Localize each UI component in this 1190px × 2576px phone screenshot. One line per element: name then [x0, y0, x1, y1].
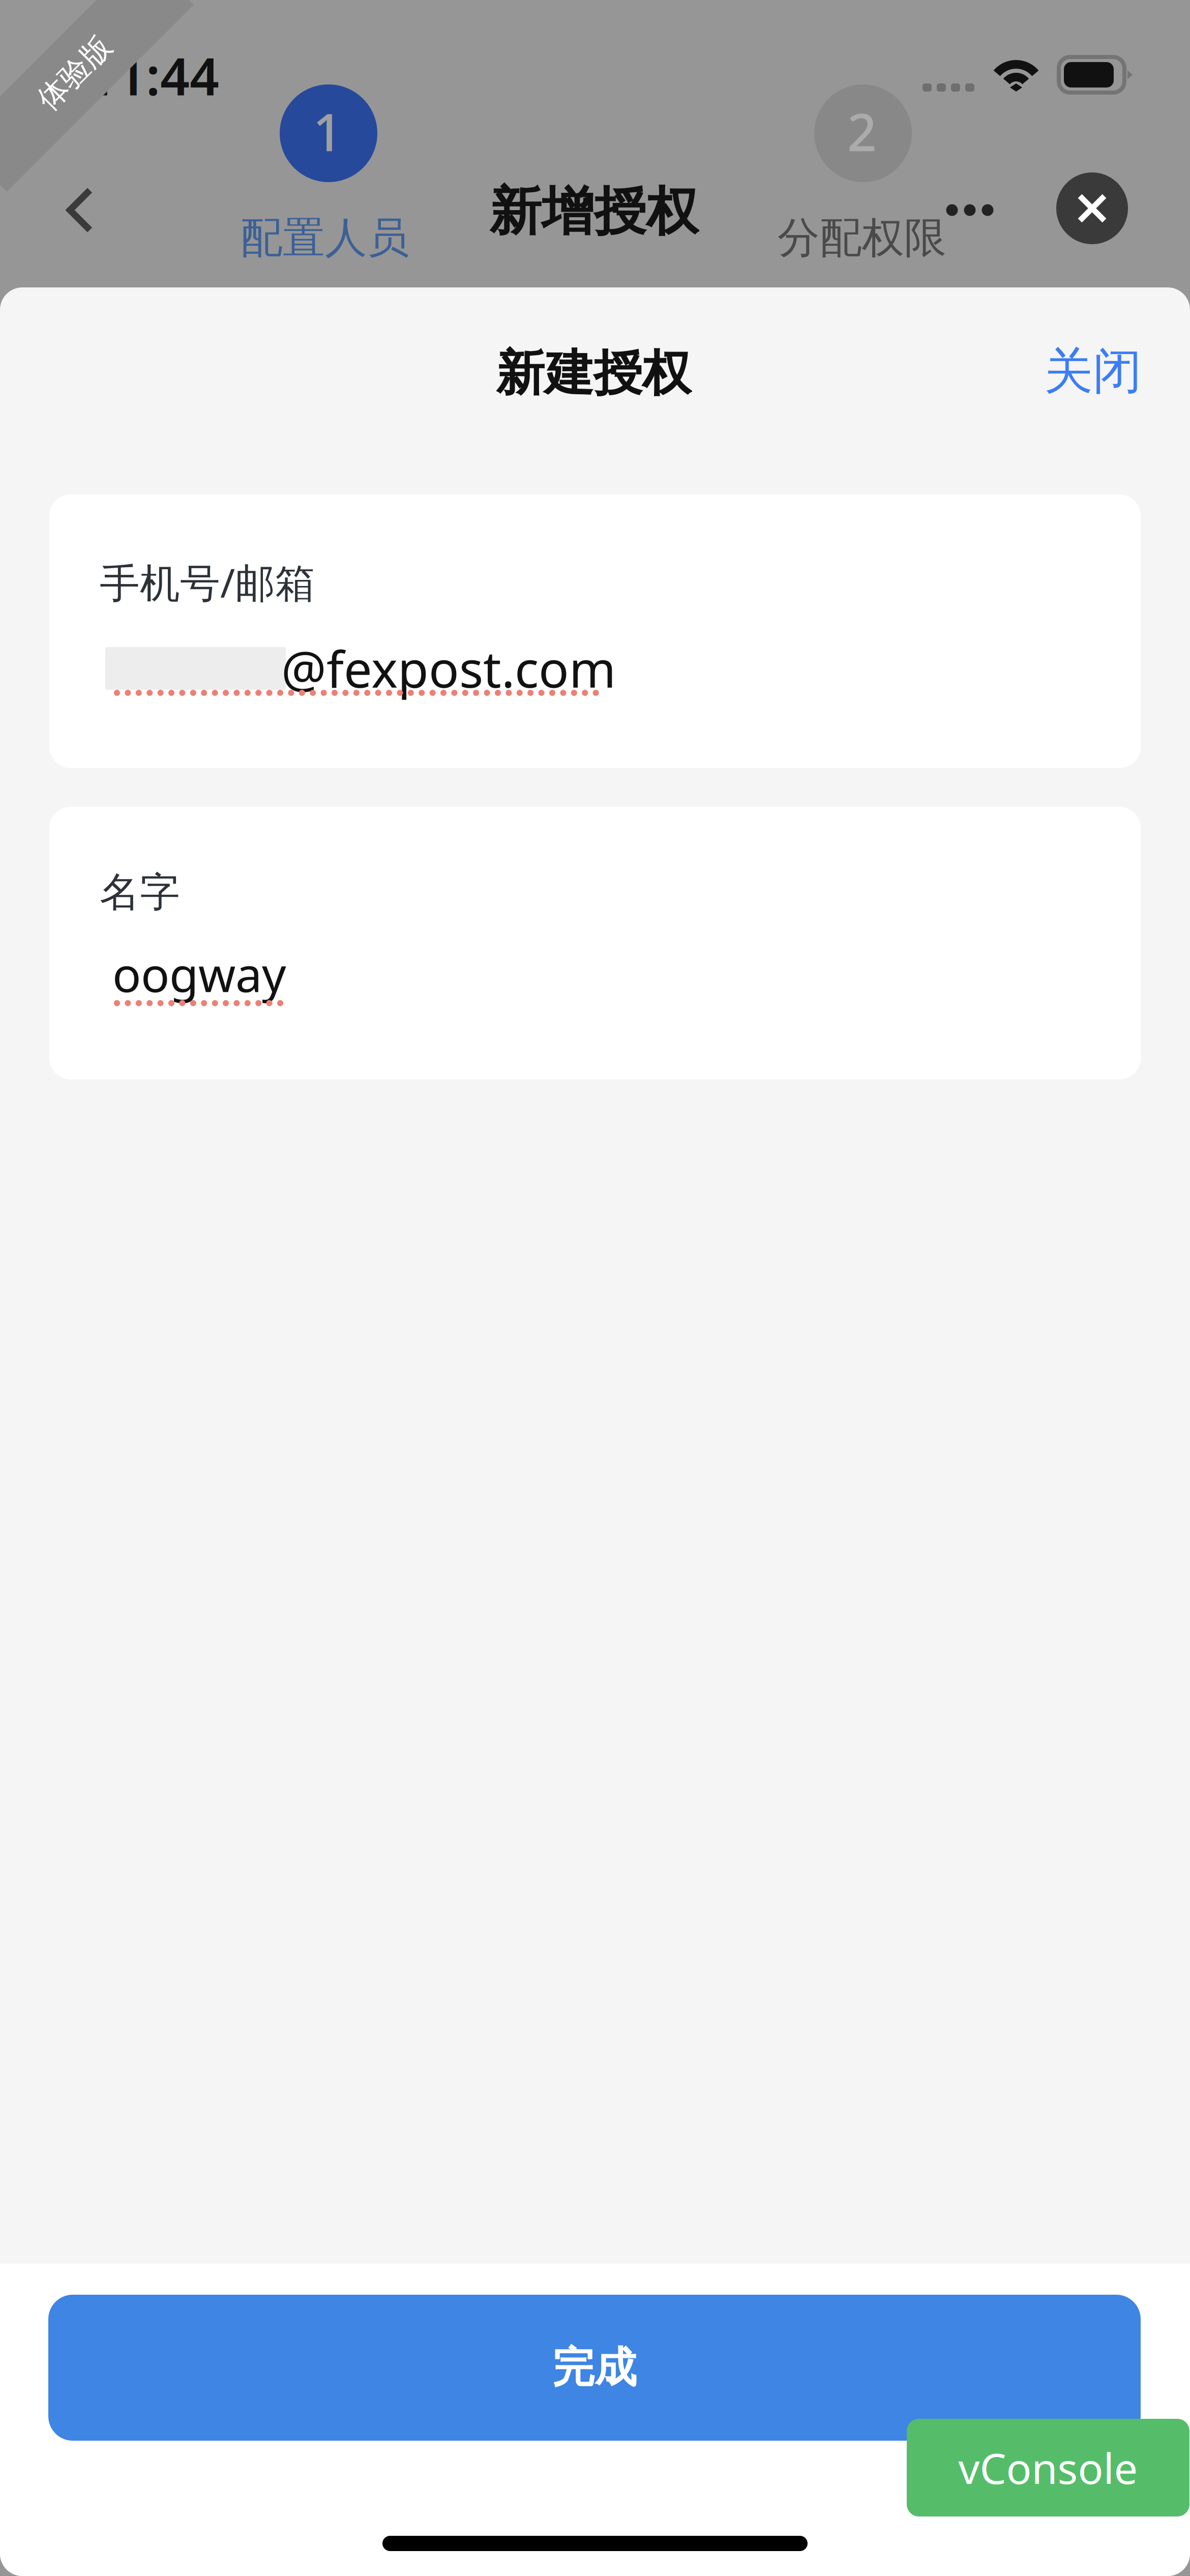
- staticText: 完成: [552, 2342, 637, 2393]
- button[interactable]: 2: [775, 84, 951, 267]
- staticText: 2: [847, 97, 877, 165]
- button[interactable]: More: [932, 182, 1008, 238]
- staticText: 新建授权: [496, 343, 691, 403]
- button[interactable]: 关闭: [1025, 336, 1161, 407]
- staticText: @fexpost.com: [281, 635, 616, 701]
- button[interactable]: 完成: [48, 2295, 1141, 2441]
- button[interactable]: vConsole: [907, 2419, 1189, 2516]
- staticText: 1: [313, 97, 342, 165]
- button[interactable]: Close mini program: [1056, 172, 1128, 244]
- staticText: 体验版: [30, 54, 120, 91]
- staticText: 手机号/邮箱: [100, 555, 315, 609]
- staticText: 分配权限: [778, 212, 946, 264]
- staticText: 配置人员: [241, 212, 409, 264]
- button[interactable]: Back: [42, 172, 118, 248]
- staticText: oogway: [112, 942, 286, 1005]
- staticText: 11:44: [87, 41, 219, 110]
- staticText: 新增授权: [489, 180, 699, 244]
- staticText: 名字: [100, 868, 180, 917]
- staticText: vConsole: [958, 2440, 1138, 2496]
- button[interactable]: 1: [240, 84, 417, 267]
- staticText: 关闭: [1044, 341, 1142, 401]
